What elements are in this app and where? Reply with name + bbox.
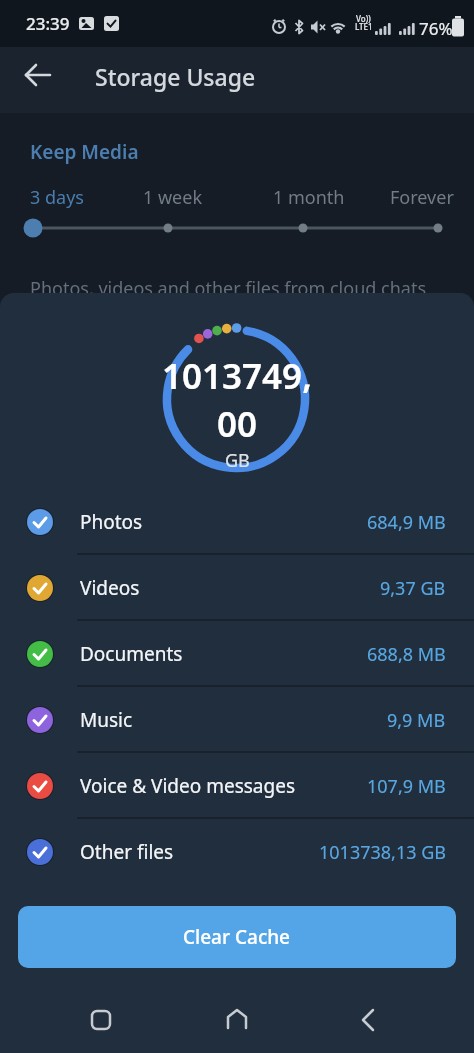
staticText: Photos <box>80 509 143 535</box>
button[interactable]: Voice & Video messages <box>0 753 474 819</box>
button[interactable]: Documents <box>0 621 474 687</box>
staticText: 9,37 GB <box>380 576 446 601</box>
staticText: 688,8 MB <box>367 642 446 667</box>
staticText: 76% <box>419 17 453 40</box>
staticText: LTE1 <box>355 21 373 32</box>
button[interactable]: Forever <box>390 185 454 210</box>
staticText: Storage Usage <box>95 61 256 92</box>
staticText: 1013749, <box>162 352 312 400</box>
staticText: Other files <box>80 839 174 865</box>
staticText: Vo)) <box>356 13 371 24</box>
button[interactable]: 3 days <box>30 185 84 210</box>
staticText: 107,9 MB <box>367 774 446 799</box>
button[interactable]: 1 week <box>143 185 203 210</box>
staticText: Documents <box>80 641 183 667</box>
staticText: 00 <box>217 400 258 448</box>
button[interactable]: Photos <box>0 489 474 555</box>
button[interactable]: Music <box>0 687 474 753</box>
staticText: Clear Cache <box>183 924 291 950</box>
staticText: 684,9 MB <box>367 510 446 535</box>
button[interactable]: Other files <box>0 819 474 885</box>
staticText: 1013738,13 GB <box>319 840 446 865</box>
button[interactable]: 1 month <box>273 185 345 210</box>
staticText: 9,9 MB <box>387 708 446 733</box>
staticText: GB <box>225 448 250 473</box>
button[interactable] <box>356 1007 382 1033</box>
button[interactable] <box>88 1007 114 1033</box>
button[interactable] <box>24 61 52 89</box>
staticText: Photos, videos and other files from clou… <box>30 276 426 301</box>
button[interactable] <box>224 1007 250 1033</box>
staticText: Music <box>80 707 133 733</box>
staticText: 23:39 <box>26 12 70 35</box>
staticText: Voice & Video messages <box>80 773 296 799</box>
button[interactable]: Videos <box>0 555 474 621</box>
button[interactable]: Clear Cache <box>18 906 456 968</box>
staticText: Videos <box>80 575 140 601</box>
staticText: Keep Media <box>30 139 139 165</box>
